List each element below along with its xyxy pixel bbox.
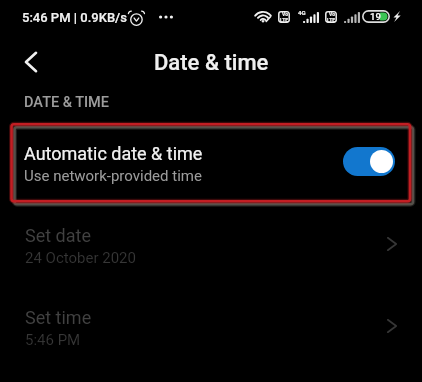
button[interactable]: Set time bbox=[0, 287, 422, 368]
staticText: 4G bbox=[298, 9, 306, 16]
button[interactable]: Set date bbox=[0, 205, 422, 286]
staticText: 24 October 2020 bbox=[25, 249, 136, 267]
staticText: LTE bbox=[327, 17, 336, 23]
button[interactable]: Automatic date & time bbox=[0, 123, 422, 203]
staticText: Vo bbox=[329, 11, 335, 17]
staticText: Vo bbox=[282, 11, 288, 17]
staticText: LTE bbox=[280, 17, 289, 23]
staticText: DATE & TIME bbox=[24, 94, 109, 111]
staticText: 5:46 PM | 0.9KB/s bbox=[22, 10, 127, 25]
staticText: 19 bbox=[370, 11, 381, 22]
staticText: 5:46 PM bbox=[25, 331, 81, 349]
staticText: Automatic date & time bbox=[24, 143, 203, 164]
staticText: Date & time bbox=[154, 50, 269, 76]
staticText: Set time bbox=[25, 307, 92, 328]
staticText: Use network-provided time bbox=[24, 167, 202, 185]
button[interactable]: Automatic date & time toggle, on bbox=[343, 147, 395, 176]
button[interactable]: Back bbox=[9, 36, 53, 88]
staticText: Set date bbox=[25, 225, 91, 246]
